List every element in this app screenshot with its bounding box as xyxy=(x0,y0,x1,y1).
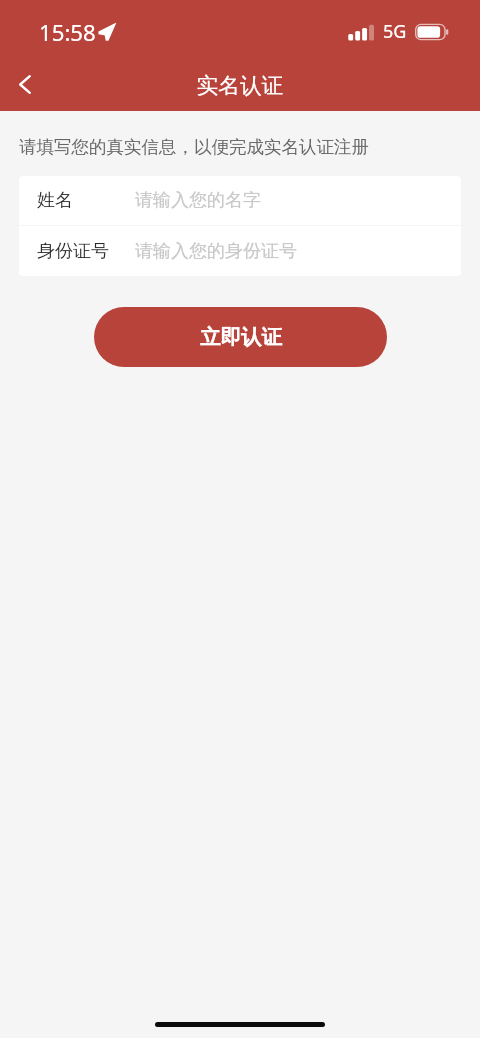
staticText: 姓名 xyxy=(37,189,73,212)
staticText: 5G xyxy=(383,19,407,44)
button[interactable]: Back xyxy=(3,62,47,106)
button[interactable]: 姓名 xyxy=(19,176,461,225)
button[interactable]: 身份证号 xyxy=(19,226,461,276)
staticText: 实名认证 xyxy=(196,72,284,99)
staticText: 立即认证 xyxy=(200,324,282,350)
other: Cellular signal xyxy=(346,23,374,41)
button[interactable]: 立即认证 xyxy=(94,307,387,367)
staticText: 请输入您的名字 xyxy=(135,189,261,212)
other: Battery full xyxy=(415,23,449,41)
staticText: 15:58 xyxy=(39,17,96,47)
staticText: 身份证号 xyxy=(37,240,109,263)
staticText: 请填写您的真实信息，以便完成实名认证注册 xyxy=(19,136,369,158)
staticText: 请输入您的身份证号 xyxy=(135,240,297,263)
other: Location active xyxy=(99,24,115,40)
